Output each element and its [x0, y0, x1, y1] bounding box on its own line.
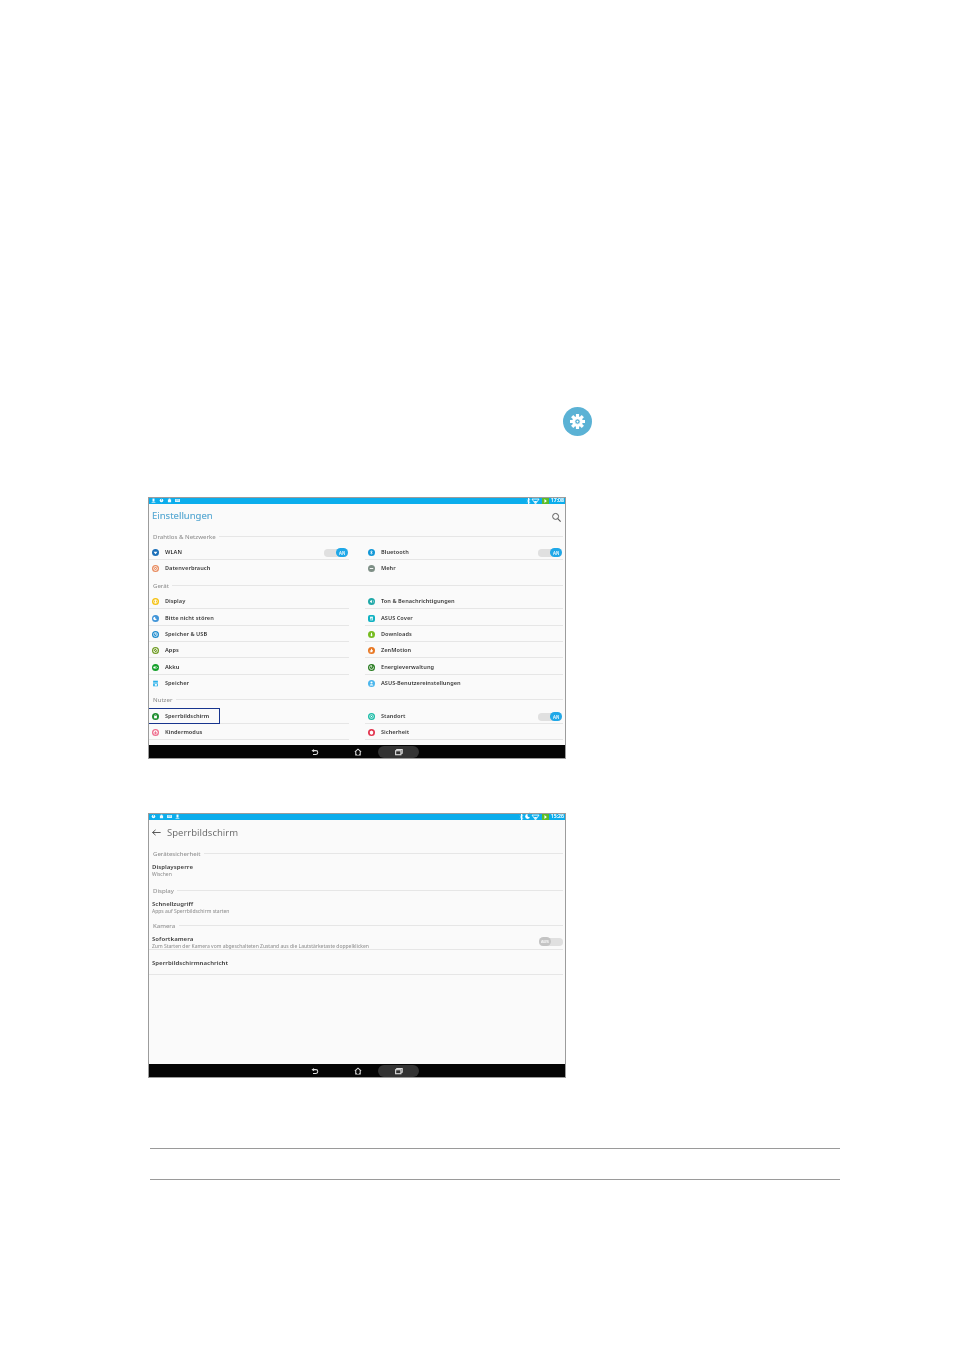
staticText: AN: [339, 550, 346, 556]
button[interactable]: Back: [150, 826, 163, 839]
staticText: Bluetooth: [381, 548, 409, 556]
button[interactable]: Sperrbildschirmnachricht: [148, 950, 566, 975]
staticText: ASUS-Benutzereinstellungen: [381, 679, 461, 687]
button[interactable]: Back: [305, 1064, 325, 1078]
staticText: Mehr: [381, 564, 396, 572]
staticText: Sperrbildschirm: [167, 826, 239, 839]
button[interactable]: Settings: [563, 407, 592, 436]
button[interactable]: Standort: [364, 708, 563, 724]
button[interactable]: Display: [148, 593, 349, 609]
button[interactable]: Recent apps: [378, 1065, 419, 1077]
staticText: Zum Starten der Kamera vom abgeschaltete…: [152, 943, 369, 950]
button[interactable]: Bitte nicht stören: [148, 610, 349, 626]
button[interactable]: Ton & Benachrichtigungen: [364, 593, 563, 609]
staticText: Energieverwaltung: [381, 663, 435, 671]
staticText: Apps: [165, 646, 179, 654]
button[interactable]: AN: [538, 712, 562, 721]
button[interactable]: WLAN: [148, 544, 349, 560]
button[interactable]: Speicher: [148, 675, 349, 691]
staticText: Einstellungen: [152, 509, 213, 522]
button[interactable]: ZenMotion: [364, 642, 563, 658]
staticText: 17:08: [551, 497, 564, 504]
staticText: AN: [553, 714, 560, 720]
button[interactable]: Downloads: [364, 626, 563, 642]
staticText: Wischen: [152, 871, 172, 878]
button[interactable]: Sicherheit: [364, 724, 563, 740]
button[interactable]: Energieverwaltung: [364, 659, 563, 675]
button[interactable]: AUS: [539, 937, 563, 946]
button[interactable]: Akku: [148, 659, 349, 675]
staticText: Sperrbildschirmnachricht: [152, 959, 229, 967]
staticText: AN: [553, 550, 560, 556]
staticText: Gerät: [153, 581, 169, 589]
staticText: WLAN: [165, 548, 182, 556]
button[interactable]: Apps: [148, 642, 349, 658]
staticText: Ton & Benachrichtigungen: [381, 597, 455, 605]
button[interactable]: AN: [324, 548, 348, 557]
button[interactable]: Sofortkamera: [148, 933, 566, 950]
staticText: Standort: [381, 712, 406, 720]
staticText: ASUS Cover: [381, 614, 413, 622]
button[interactable]: Search: [549, 510, 563, 524]
staticText: AUS: [541, 939, 549, 944]
staticText: Sofortkamera: [152, 935, 194, 943]
staticText: Bitte nicht stören: [165, 614, 214, 622]
staticText: Gerätesicherheit: [153, 849, 201, 857]
staticText: Sperrbildschirm: [165, 712, 210, 720]
button[interactable]: Bluetooth: [364, 544, 563, 560]
button[interactable]: Home: [348, 745, 368, 759]
staticText: 15:26: [551, 813, 564, 820]
button[interactable]: Home: [348, 1064, 368, 1078]
button[interactable]: Recent apps: [378, 746, 419, 758]
staticText: Display: [165, 597, 186, 605]
staticText: Nutzer: [153, 695, 173, 703]
staticText: Schnellzugriff: [152, 900, 194, 908]
button[interactable]: Displaysperre: [148, 861, 566, 882]
staticText: Datenverbrauch: [165, 564, 211, 572]
button[interactable]: Sperrbildschirm: [148, 708, 349, 724]
staticText: Kindermodus: [165, 728, 203, 736]
button[interactable]: ASUS-Benutzereinstellungen: [364, 675, 563, 691]
staticText: Drahtlos & Netzwerke: [153, 532, 216, 540]
staticText: Akku: [165, 663, 180, 671]
staticText: Apps auf Sperrbildschirm starten: [152, 908, 230, 915]
button[interactable]: Back: [305, 745, 325, 759]
staticText: ZenMotion: [381, 646, 412, 654]
button[interactable]: Kindermodus: [148, 724, 349, 740]
button[interactable]: Schnellzugriff: [148, 898, 566, 917]
button[interactable]: Datenverbrauch: [148, 560, 349, 576]
button[interactable]: Mehr: [364, 560, 563, 576]
staticText: Kamera: [153, 921, 176, 929]
button[interactable]: ASUS Cover: [364, 610, 563, 626]
staticText: Displaysperre: [152, 863, 194, 871]
staticText: Sicherheit: [381, 728, 410, 736]
staticText: Speicher & USB: [165, 630, 208, 638]
staticText: Speicher: [165, 679, 189, 687]
staticText: Downloads: [381, 630, 412, 638]
button[interactable]: AN: [538, 548, 562, 557]
button[interactable]: Speicher & USB: [148, 626, 349, 642]
staticText: Display: [153, 886, 174, 894]
